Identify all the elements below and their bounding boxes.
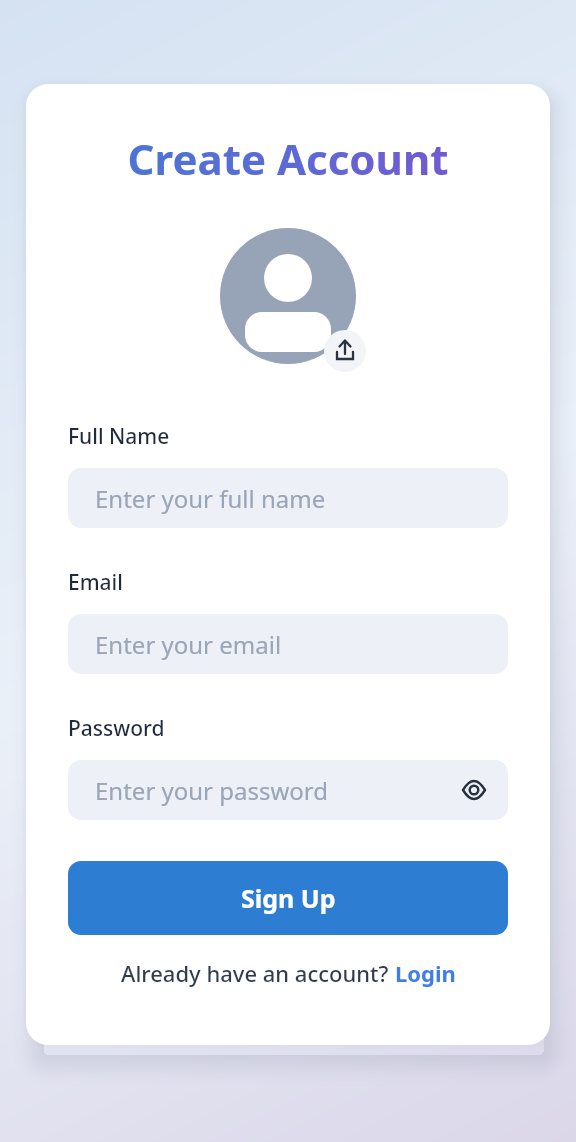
staticText: Enter your password xyxy=(95,774,329,807)
staticText: Enter your email xyxy=(95,628,282,661)
staticText: Already have an account? xyxy=(121,958,395,988)
button[interactable]: Enter your full name xyxy=(68,468,508,528)
button[interactable]: Enter your email xyxy=(68,614,508,674)
button[interactable]: Login xyxy=(395,958,456,988)
staticText: Full Name xyxy=(68,422,170,451)
button[interactable] xyxy=(462,781,486,799)
staticText: Create Account xyxy=(68,130,508,187)
staticText: Enter your full name xyxy=(95,482,326,515)
staticText: Sign Up xyxy=(241,881,336,915)
button[interactable]: Sign Up xyxy=(68,861,508,935)
button[interactable] xyxy=(220,228,356,364)
staticText: Email xyxy=(68,568,123,597)
button[interactable]: Enter your password xyxy=(68,760,508,820)
staticText: Login xyxy=(395,958,456,988)
staticText: Password xyxy=(68,714,165,743)
